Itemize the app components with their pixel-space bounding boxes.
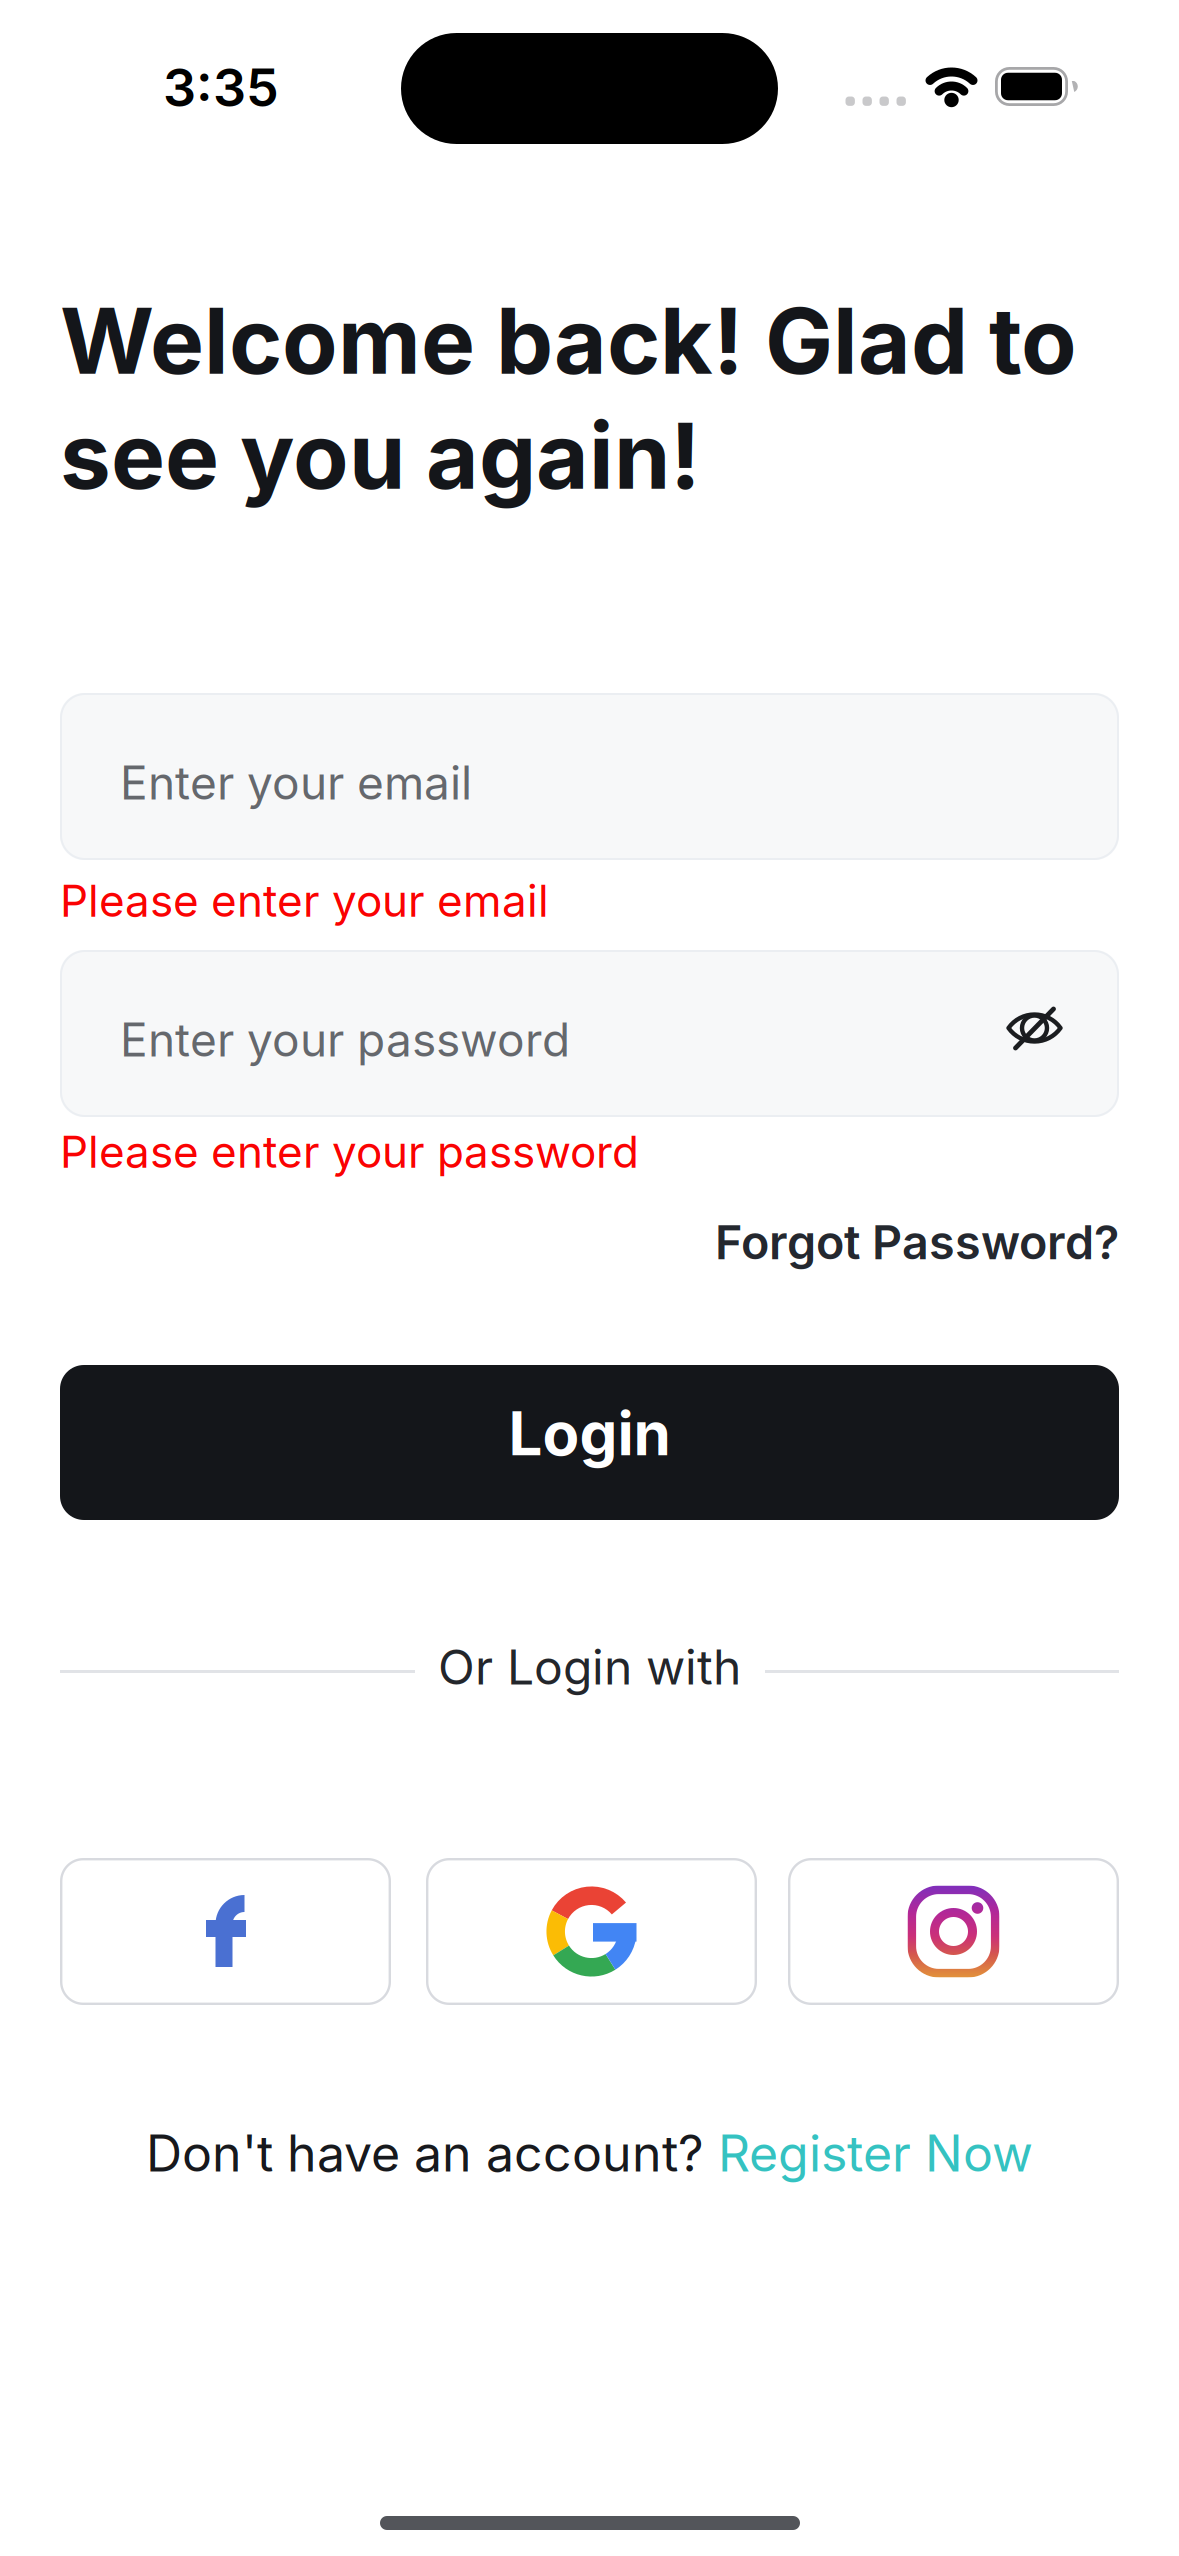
staticText: Or Login with [438,1638,741,1696]
staticText: 3:35 [163,56,279,119]
staticText: Login [508,1397,670,1470]
staticText: Please enter your password [60,1125,639,1178]
staticText: Don't have an account? [146,2123,718,2183]
staticText: Enter your password [120,1012,570,1068]
staticText: Welcome back! Glad to [60,286,1077,396]
staticText: see you again! [60,401,701,511]
staticText: Enter your email [120,755,472,811]
staticText: Register Now [718,2123,1033,2183]
staticText: Please enter your email [60,874,549,927]
staticText: Forgot Password? [715,1214,1119,1270]
